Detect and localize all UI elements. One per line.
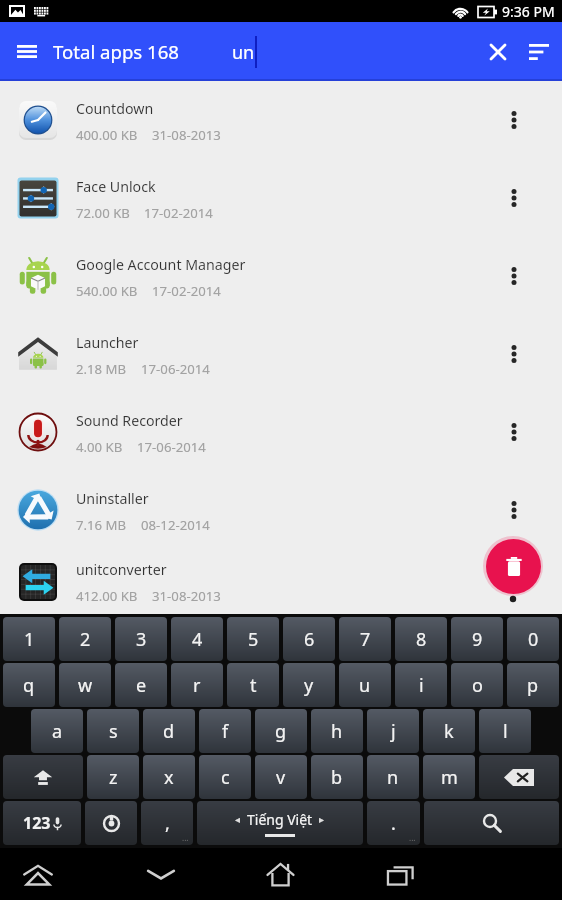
button[interactable]: 6 (283, 617, 335, 661)
button[interactable]: y (283, 663, 335, 707)
button[interactable]: More options (466, 471, 562, 549)
staticText: un (232, 40, 255, 65)
button[interactable]: Uninstaller (0, 471, 562, 549)
button[interactable]: q (3, 663, 55, 707)
staticText: Sound Recorder (76, 411, 183, 430)
button[interactable]: i (395, 663, 447, 707)
staticText: k (444, 719, 454, 744)
staticText: 7 (360, 627, 371, 652)
button[interactable]: More options (466, 159, 562, 237)
staticText: 8 (416, 627, 427, 652)
button[interactable]: x (143, 755, 195, 799)
button[interactable]: 4 (171, 617, 223, 661)
button[interactable]: Face Unlock (0, 159, 562, 237)
button[interactable]: u (339, 663, 391, 707)
staticText: p (527, 673, 539, 698)
button[interactable]: Menu (0, 22, 53, 81)
button[interactable]: More options (466, 315, 562, 393)
staticText: 6 (304, 627, 315, 652)
button[interactable]: Delete (486, 539, 541, 594)
staticText: e (136, 673, 147, 698)
button[interactable]: Hide keyboard (131, 848, 191, 900)
button[interactable]: Sort (516, 22, 562, 81)
staticText: d (163, 719, 175, 744)
button[interactable]: More options (466, 81, 562, 159)
staticText: t (250, 673, 257, 698)
button[interactable] (424, 801, 559, 845)
button[interactable]: j (367, 709, 419, 753)
staticText: 17-06-2014 (137, 438, 206, 456)
button[interactable]: Sound Recorder (0, 393, 562, 471)
button[interactable]: Home (250, 848, 310, 900)
button[interactable]: ◂ (197, 801, 363, 845)
button[interactable]: . (367, 801, 420, 845)
staticText: 2 (80, 627, 91, 652)
button[interactable]: Google Account Manager (0, 237, 562, 315)
button[interactable]: 2 (59, 617, 111, 661)
button[interactable]: s (87, 709, 139, 753)
button[interactable]: n (367, 755, 419, 799)
button[interactable]: unitconverter (0, 549, 562, 614)
button[interactable]: t (227, 663, 279, 707)
button[interactable]: g (255, 709, 307, 753)
button[interactable]: m (423, 755, 475, 799)
button[interactable]: r (171, 663, 223, 707)
button[interactable]: 0 (507, 617, 559, 661)
button[interactable]: v (255, 755, 307, 799)
staticText: l (503, 719, 508, 744)
button[interactable]: 123 (3, 801, 81, 845)
button[interactable]: 1 (3, 617, 55, 661)
staticText: 540.00 KB (76, 282, 138, 300)
staticText: h (331, 719, 343, 744)
button[interactable]: l (479, 709, 531, 753)
staticText: 4.00 KB (76, 438, 123, 456)
staticText: z (109, 765, 118, 790)
button[interactable]: More options (466, 393, 562, 471)
staticText: ... (182, 832, 189, 843)
button[interactable]: k (423, 709, 475, 753)
staticText: y (304, 673, 314, 698)
staticText: n (387, 765, 399, 790)
staticText: a (52, 719, 63, 744)
button[interactable]: 7 (339, 617, 391, 661)
button[interactable]: f (199, 709, 251, 753)
button[interactable]: 8 (395, 617, 447, 661)
button[interactable]: d (143, 709, 195, 753)
staticText: w (78, 673, 93, 698)
button[interactable]: b (311, 755, 363, 799)
staticText: 5 (248, 627, 259, 652)
staticText: 4 (192, 627, 203, 652)
button[interactable]: 5 (227, 617, 279, 661)
button[interactable]: 9 (451, 617, 503, 661)
button[interactable]: c (199, 755, 251, 799)
button[interactable]: Recent apps (370, 848, 430, 900)
button[interactable]: z (87, 755, 139, 799)
button[interactable]: Clear search (479, 22, 516, 81)
button[interactable]: More options (466, 237, 562, 315)
button[interactable]: Countdown (0, 81, 562, 159)
button[interactable] (3, 755, 83, 799)
staticText: Countdown (76, 99, 154, 118)
staticText: , (165, 811, 170, 836)
button[interactable]: o (451, 663, 503, 707)
staticText: v (276, 765, 286, 790)
button[interactable] (85, 801, 137, 845)
staticText: s (109, 719, 118, 744)
button[interactable]: Launcher (0, 315, 562, 393)
staticText: 1 (24, 627, 35, 652)
button[interactable]: 3 (115, 617, 167, 661)
button[interactable]: p (507, 663, 559, 707)
button[interactable]: h (311, 709, 363, 753)
button[interactable]: More options (466, 549, 562, 614)
staticText: r (193, 673, 201, 698)
staticText: f (222, 719, 229, 744)
button[interactable] (479, 755, 559, 799)
staticText: m (441, 765, 458, 790)
staticText: u (359, 673, 371, 698)
staticText: ... (409, 832, 416, 843)
button[interactable]: e (115, 663, 167, 707)
button[interactable]: w (59, 663, 111, 707)
button[interactable]: , (141, 801, 193, 845)
button[interactable]: a (31, 709, 83, 753)
button[interactable]: Back (8, 848, 68, 900)
